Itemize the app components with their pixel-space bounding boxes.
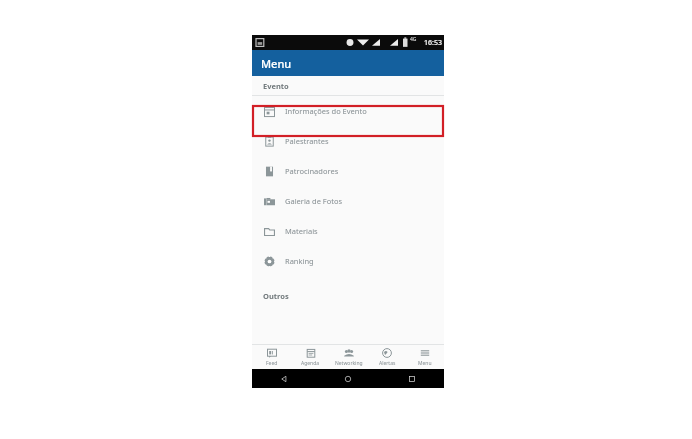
button[interactable]: Palestrantes [252, 126, 444, 156]
button[interactable]: Agenda [291, 345, 330, 369]
button[interactable]: Galeria de Fotos [252, 186, 444, 216]
staticText: Patrocinadores [285, 166, 339, 176]
staticText: Networking [335, 360, 363, 367]
button[interactable]: Menu [252, 50, 444, 76]
button[interactable]: Alertas [368, 345, 406, 369]
button[interactable]: Networking [330, 345, 368, 369]
staticText: Alertas [379, 360, 396, 367]
staticText: Outros [263, 291, 289, 301]
button[interactable]: Materiais [252, 216, 444, 246]
staticText: 4G [410, 36, 417, 43]
staticText: Feed [266, 360, 278, 367]
staticText: Ranking [285, 256, 314, 266]
staticText: Galeria de Fotos [285, 196, 343, 206]
button[interactable]: Ranking [252, 246, 444, 276]
button[interactable]: Patrocinadores [252, 156, 444, 186]
staticText: Menu [418, 360, 432, 367]
staticText: 16:53 [424, 38, 442, 48]
button[interactable]: Feed [252, 345, 291, 369]
button[interactable]: Recent apps [380, 369, 444, 388]
button[interactable]: Menu [406, 345, 444, 369]
button[interactable]: Back [252, 369, 316, 388]
staticText: Palestrantes [285, 136, 329, 146]
button[interactable]: Informações do Evento [252, 96, 444, 126]
staticText: Agenda [301, 360, 320, 367]
staticText: Menu [261, 56, 292, 71]
staticText: Evento [263, 81, 289, 91]
button[interactable]: Home [316, 369, 380, 388]
staticText: Informações do Evento [285, 106, 367, 116]
staticText: Materiais [285, 226, 318, 236]
